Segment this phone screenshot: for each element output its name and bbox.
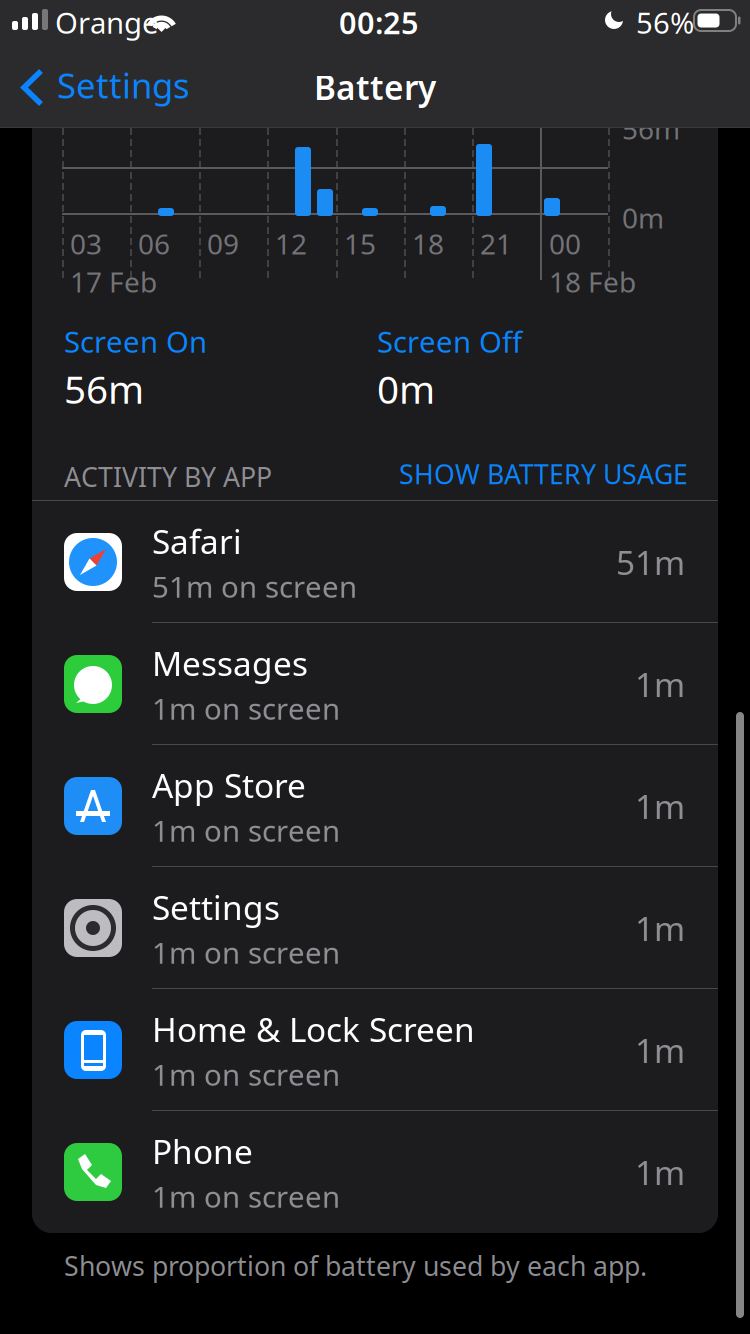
staticText: Shows proportion of battery used by each… — [64, 1248, 647, 1283]
staticText: 18 — [412, 225, 444, 262]
staticText: 56% — [636, 3, 694, 42]
staticText: Settings — [57, 62, 190, 108]
staticText: Screen Off — [377, 322, 522, 361]
staticText: 1m on screen — [152, 933, 340, 972]
staticText: Safari — [152, 519, 242, 563]
staticText: 09 — [207, 225, 239, 262]
staticText: 1m on screen — [152, 1177, 340, 1216]
staticText: 1m on screen — [152, 689, 340, 728]
staticText: 21 — [480, 225, 512, 262]
staticText: 00 — [549, 225, 581, 262]
staticText: 1m — [635, 784, 685, 828]
staticText: 00:25 — [339, 2, 419, 43]
staticText: Settings — [152, 885, 280, 929]
staticText: 51m on screen — [152, 567, 357, 606]
staticText: 15 — [344, 225, 376, 262]
staticText: 1m — [635, 1028, 685, 1072]
button[interactable]: Safari — [32, 501, 718, 623]
staticText: 51m — [616, 540, 685, 584]
staticText: ACTIVITY BY APP — [64, 459, 272, 494]
staticText: Phone — [152, 1129, 253, 1173]
staticText: 03 — [70, 225, 102, 262]
button[interactable]: Messages — [32, 623, 718, 745]
staticText: App Store — [152, 763, 306, 807]
staticText: 12 — [275, 225, 307, 262]
staticText: 18 Feb — [549, 263, 636, 300]
staticText: 1m — [635, 906, 685, 950]
staticText: 1m — [635, 662, 685, 706]
button[interactable]: Settings — [0, 46, 300, 128]
button[interactable]: Phone — [32, 1111, 718, 1233]
staticText: 1m on screen — [152, 811, 340, 850]
button[interactable]: Settings — [32, 867, 718, 989]
staticText: Battery — [314, 65, 436, 109]
staticText: Messages — [152, 641, 308, 685]
button[interactable]: App Store — [32, 745, 718, 867]
button[interactable]: Home & Lock Screen — [32, 989, 718, 1111]
staticText: 1m on screen — [152, 1055, 340, 1094]
staticText: 1m — [635, 1150, 685, 1194]
button[interactable]: SHOW BATTERY USAGE — [0, 452, 750, 496]
staticText: Orange — [55, 3, 159, 42]
staticText: 17 Feb — [70, 263, 157, 300]
staticText: SHOW BATTERY USAGE — [399, 456, 688, 492]
staticText: Screen On — [64, 322, 207, 361]
staticText: Home & Lock Screen — [152, 1007, 475, 1051]
staticText: 56m — [622, 110, 680, 147]
staticText: 56m — [64, 363, 144, 414]
staticText: 0m — [377, 363, 435, 414]
staticText: 0m — [622, 199, 664, 236]
staticText: 06 — [138, 225, 170, 262]
